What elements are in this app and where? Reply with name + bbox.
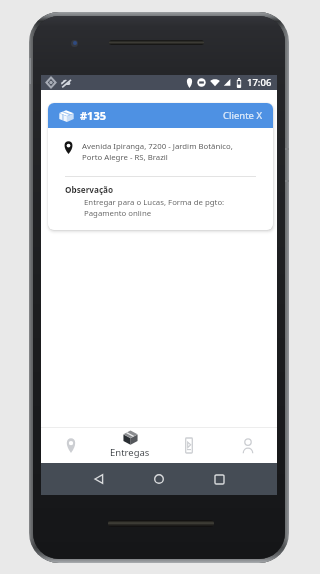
button[interactable]: Entregas — [100, 428, 159, 463]
staticText: #135 — [80, 108, 106, 123]
button[interactable]: Dispositivo — [159, 428, 218, 463]
button[interactable]: Back — [86, 466, 112, 492]
staticText: Entregar para o Lucas, Forma de pgto: Pa… — [84, 197, 225, 218]
button[interactable]: Perfil — [218, 428, 277, 463]
button[interactable]: Home — [146, 466, 172, 492]
staticText: Entregas — [110, 446, 150, 459]
button[interactable]: Localização — [41, 428, 100, 463]
button[interactable]: Recents — [206, 466, 232, 492]
staticText: Cliente X — [223, 109, 262, 122]
staticText: 17:06 — [247, 76, 272, 89]
button[interactable]: #135 — [48, 103, 273, 128]
staticText: Avenida Ipiranga, 7200 - Jardim Botânico… — [82, 141, 233, 162]
staticText: Observação — [65, 184, 114, 195]
